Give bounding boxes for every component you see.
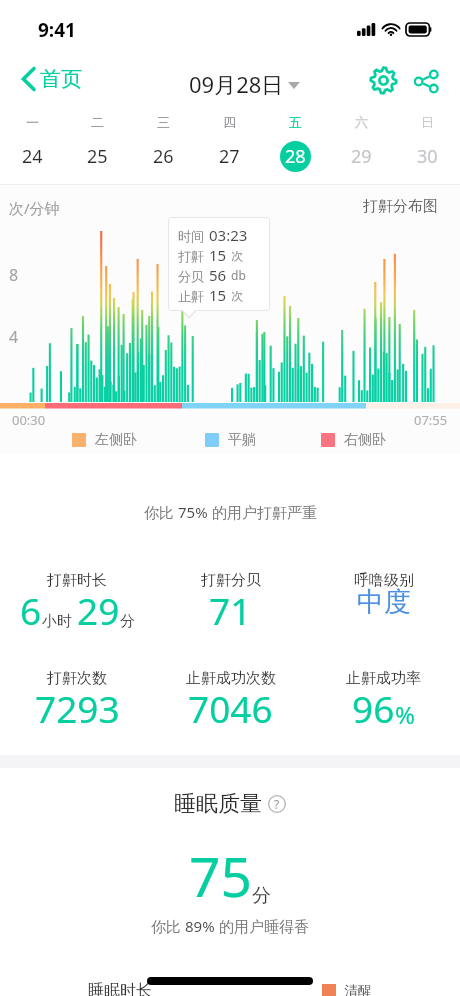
- staticText: 89%: [185, 916, 215, 936]
- button[interactable]: 30: [394, 141, 460, 172]
- staticText: 打鼾次数: [47, 669, 107, 688]
- staticText: db: [231, 267, 246, 283]
- staticText: 时间: [178, 228, 204, 244]
- button[interactable]: Share: [404, 59, 448, 103]
- staticText: 75: [189, 838, 252, 913]
- staticText: 7046: [188, 683, 273, 733]
- staticText: 止鼾成功率: [346, 669, 421, 688]
- staticText: 71: [209, 585, 252, 635]
- staticText: 分: [120, 612, 135, 631]
- staticText: 的用户打鼾严重: [208, 502, 317, 522]
- staticText: 28: [285, 144, 306, 169]
- staticText: 平躺: [228, 431, 256, 449]
- staticText: 07:55: [414, 411, 448, 429]
- button[interactable]: 首页: [16, 62, 88, 96]
- staticText: 呼噜级别: [354, 571, 414, 590]
- staticText: 75%: [178, 502, 208, 522]
- staticText: 次: [231, 288, 243, 303]
- staticText: 56: [209, 265, 227, 285]
- staticText: 清醒: [344, 983, 372, 996]
- button[interactable]: 24: [0, 141, 65, 172]
- staticText: 四: [223, 114, 236, 130]
- staticText: 15: [209, 245, 227, 265]
- button[interactable]: 29: [328, 141, 394, 172]
- button[interactable]: 25: [65, 141, 130, 172]
- staticText: 的用户睡得香: [215, 916, 309, 936]
- staticText: 25: [87, 144, 108, 169]
- staticText: 六: [355, 114, 368, 130]
- button[interactable]: 右侧卧: [321, 431, 386, 449]
- staticText: 30: [417, 144, 438, 169]
- staticText: 打鼾: [178, 248, 204, 264]
- staticText: 次/分钟: [9, 198, 60, 218]
- staticText: 你比: [151, 916, 185, 936]
- staticText: 24: [22, 144, 43, 169]
- staticText: 打鼾分布图: [363, 197, 438, 216]
- staticText: 五: [289, 114, 302, 130]
- staticText: 止鼾成功次数: [186, 669, 276, 688]
- staticText: 三: [157, 114, 170, 130]
- staticText: 03:23: [209, 225, 248, 245]
- staticText: 27: [219, 144, 240, 169]
- staticText: 分贝: [178, 268, 204, 284]
- button[interactable]: 左侧卧: [72, 431, 137, 449]
- staticText: 小时: [42, 612, 72, 631]
- staticText: 分: [252, 884, 271, 908]
- staticText: 二: [91, 114, 104, 130]
- staticText: ?: [274, 796, 280, 812]
- staticText: 睡眠时长: [88, 981, 152, 996]
- staticText: 中度: [357, 585, 411, 619]
- staticText: 26: [153, 144, 174, 169]
- staticText: %: [395, 698, 415, 731]
- staticText: 15: [209, 285, 227, 305]
- staticText: 09月28日: [189, 69, 284, 99]
- staticText: 右侧卧: [344, 431, 386, 449]
- button[interactable]: 27: [196, 141, 262, 172]
- staticText: 29: [77, 585, 120, 635]
- staticText: 左侧卧: [95, 431, 137, 449]
- staticText: 7293: [35, 683, 120, 733]
- button[interactable]: 平躺: [205, 431, 256, 449]
- staticText: 4: [9, 326, 19, 348]
- button[interactable]: 26: [130, 141, 196, 172]
- staticText: 睡眠质量: [174, 790, 262, 818]
- staticText: 29: [351, 144, 372, 169]
- staticText: 次: [231, 248, 243, 263]
- staticText: 96: [352, 683, 395, 733]
- staticText: 止鼾: [178, 288, 204, 304]
- staticText: 9:41: [38, 17, 76, 43]
- staticText: 6: [20, 585, 42, 635]
- staticText: 打鼾时长: [47, 571, 107, 590]
- staticText: 一: [26, 114, 39, 130]
- button[interactable]: 09月28日: [189, 69, 300, 99]
- staticText: 打鼾分贝: [201, 571, 261, 590]
- staticText: 日: [421, 114, 434, 130]
- staticText: 00:30: [12, 411, 46, 429]
- staticText: 首页: [40, 66, 82, 92]
- button[interactable]: 28: [262, 141, 328, 172]
- button[interactable]: Help: [267, 794, 287, 814]
- button[interactable]: Settings: [362, 59, 404, 101]
- staticText: 你比: [144, 502, 178, 522]
- staticText: 8: [9, 264, 19, 286]
